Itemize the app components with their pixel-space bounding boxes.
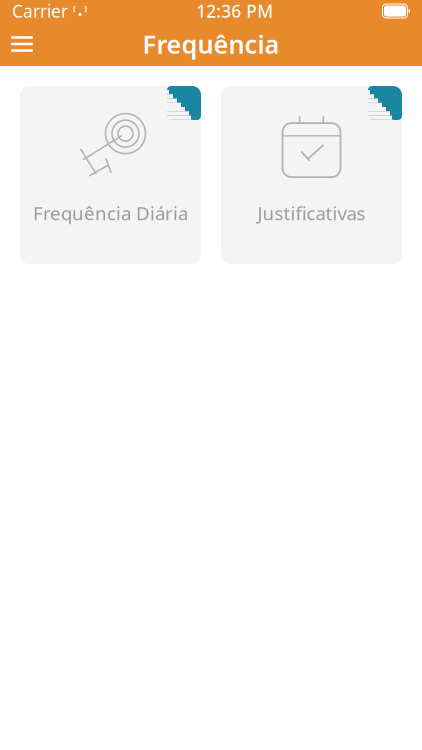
staticText: 12:36 PM [196, 0, 273, 22]
staticText: Justificativas [257, 201, 365, 225]
button[interactable]: Menu [0, 22, 44, 66]
staticText: Carrier [12, 0, 68, 22]
button[interactable]: Justificativas [221, 86, 402, 264]
staticText: Frequência Diária [33, 201, 188, 225]
staticText: Frequência [142, 27, 279, 61]
button[interactable]: Frequência Diária [20, 86, 201, 264]
